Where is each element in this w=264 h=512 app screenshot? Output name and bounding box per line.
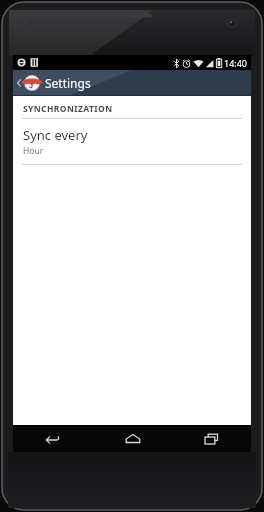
staticText: Sync every	[23, 126, 88, 144]
button[interactable]: Sync every	[13, 119, 251, 164]
button[interactable]: Navigate up	[13, 70, 99, 96]
staticText: 14:40	[224, 57, 248, 69]
button[interactable]: Back	[13, 425, 93, 452]
staticText: SYNCHRONIZATION	[23, 103, 113, 115]
button[interactable]: Recent apps	[172, 425, 251, 452]
staticText: Hour	[23, 145, 44, 157]
other: Navigate up	[16, 76, 23, 90]
staticText: Settings	[45, 75, 91, 91]
button[interactable]: Home	[93, 425, 172, 452]
